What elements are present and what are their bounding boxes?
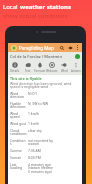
button[interactable]: Wind xyxy=(58,62,70,73)
button[interactable]: Actions xyxy=(70,62,82,73)
staticText: Last loading xyxy=(10,162,27,170)
staticText: Actions xyxy=(71,69,81,73)
staticText: Wind speed xyxy=(10,111,27,119)
staticText: weather stations xyxy=(20,3,71,11)
button[interactable]: Text xyxy=(21,62,34,73)
staticText: Paragliding Map xyxy=(19,45,54,51)
staticText: Wind direction xyxy=(10,91,27,99)
staticText: Local xyxy=(3,3,20,11)
staticText: Conditions xyxy=(10,138,27,146)
staticText: Wind direction has been ignored, wind sp… xyxy=(10,81,80,89)
staticText: Webcams xyxy=(46,69,58,73)
button[interactable]: Details xyxy=(8,62,21,73)
staticText: Cloud conditions xyxy=(10,128,27,136)
staticText: N, SW to NW xyxy=(28,101,53,106)
staticText: 4 minutes ago (station lifetime 5 minute… xyxy=(28,162,53,174)
staticText: Text xyxy=(25,69,31,73)
staticText: clear sky xyxy=(28,128,53,133)
staticText: 8:00 PM xyxy=(28,155,53,160)
staticText: 1 km/h xyxy=(28,121,53,126)
staticText: Sunset xyxy=(10,155,27,160)
staticText: 1 km/h xyxy=(28,111,53,116)
staticText: 7:36 AM xyxy=(28,148,53,153)
button[interactable]: Open navigation xyxy=(10,44,18,52)
staticText: Details xyxy=(10,69,19,73)
button[interactable]: Forecast xyxy=(34,62,46,73)
staticText: Wind xyxy=(61,69,68,73)
button[interactable]: Webcams xyxy=(46,62,58,73)
button[interactable]: Layers xyxy=(66,44,74,52)
staticText: Forecast xyxy=(34,69,46,73)
staticText: This site is flyable xyxy=(10,76,42,81)
button[interactable]: More options xyxy=(74,44,81,51)
button[interactable]: Search xyxy=(58,44,66,52)
staticText: Col de la Forclaz / Montmin xyxy=(10,54,62,59)
staticText: not reported by station xyxy=(28,138,53,146)
staticText: Wind gust xyxy=(10,121,27,126)
staticText: N (0°) xyxy=(28,91,53,96)
staticText: show actual conditions xyxy=(3,12,68,20)
staticText: Sunrise xyxy=(10,148,27,153)
staticText: Flyable directions xyxy=(10,101,27,109)
